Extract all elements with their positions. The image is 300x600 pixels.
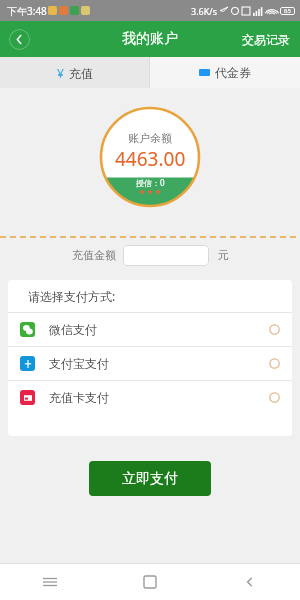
staticText: 4463.00	[115, 146, 186, 172]
button[interactable]: 微信支付	[8, 313, 292, 346]
button[interactable]: 交易记录	[232, 24, 300, 55]
button[interactable]: Back	[200, 564, 300, 600]
button[interactable]: Back	[9, 29, 30, 50]
staticText: 微信支付	[49, 322, 97, 337]
staticText: 请选择支付方式:	[28, 288, 116, 304]
staticText: 支付宝支付	[49, 356, 109, 371]
button[interactable]	[123, 245, 209, 266]
button[interactable]: 代金券	[150, 57, 300, 88]
staticText: 充值卡支付	[49, 390, 109, 405]
staticText: ¥	[57, 65, 64, 81]
button[interactable]: Home	[100, 564, 200, 600]
staticText: 下午3:48	[7, 4, 47, 18]
staticText: 充值	[69, 66, 93, 81]
staticText: 立即支付	[122, 470, 178, 488]
staticText: 65	[284, 7, 291, 15]
button[interactable]: ¥	[0, 57, 149, 88]
button[interactable]: 立即支付	[89, 461, 211, 496]
button[interactable]: 充值卡支付	[8, 381, 292, 414]
staticText: 授信：0	[136, 177, 165, 188]
button[interactable]: 支付宝支付	[8, 347, 292, 380]
staticText: 账户余额	[128, 131, 172, 145]
staticText: 交易记录	[242, 32, 290, 47]
staticText: 我的账户	[122, 30, 178, 48]
staticText: 代金券	[215, 65, 251, 80]
staticText: 3.6K/s	[191, 5, 217, 17]
button[interactable]: Menu	[0, 564, 100, 600]
staticText: 充值金额	[72, 248, 116, 262]
staticText: 元	[218, 248, 229, 262]
